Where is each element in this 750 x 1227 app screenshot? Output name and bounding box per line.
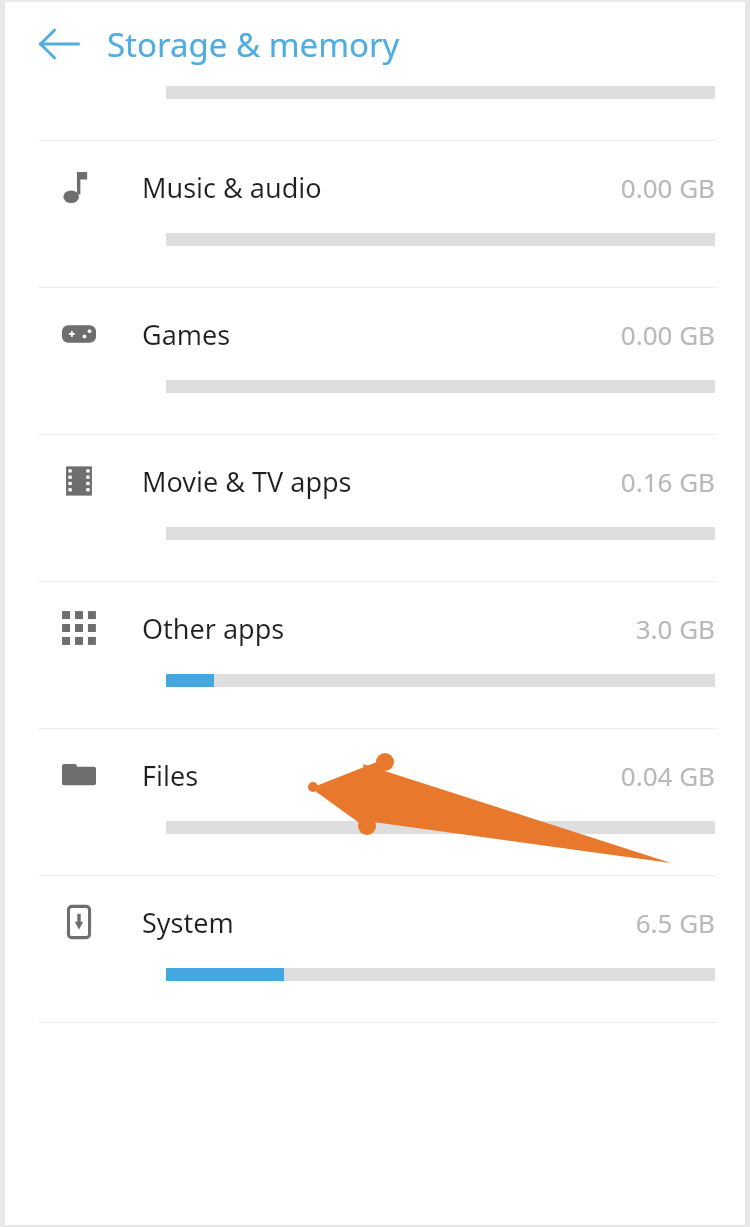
staticText: Music & audio xyxy=(142,169,322,206)
button[interactable]: Movie & TV apps xyxy=(5,435,745,582)
button[interactable]: Music & audio xyxy=(5,141,745,288)
staticText: 0.16 GB xyxy=(620,464,715,499)
staticText: Other apps xyxy=(142,610,285,647)
staticText: 0.00 GB xyxy=(620,317,715,352)
button[interactable]: Back xyxy=(32,17,86,71)
staticText: 6.5 GB xyxy=(635,905,715,940)
button[interactable]: Files xyxy=(5,729,745,876)
staticText: Storage & memory xyxy=(107,22,400,67)
button[interactable]: Games xyxy=(5,288,745,435)
staticText: Games xyxy=(142,316,231,353)
staticText: 0.00 GB xyxy=(620,170,715,205)
staticText: 0.04 GB xyxy=(620,758,715,793)
staticText: System xyxy=(142,904,234,941)
staticText: 3.0 GB xyxy=(635,611,715,646)
staticText: Movie & TV apps xyxy=(142,463,352,500)
staticText: Files xyxy=(142,757,199,794)
button[interactable]: System xyxy=(5,876,745,1023)
button[interactable]: Other apps xyxy=(5,582,745,729)
